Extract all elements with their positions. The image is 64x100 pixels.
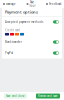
staticText: Bank transfer: [5, 40, 22, 44]
staticText: Accepted payment methods: [5, 20, 43, 24]
button[interactable]: Manage: [3, 0, 16, 8]
button[interactable]: Bank transfer: [2, 36, 62, 47]
button[interactable]: Feedback: [46, 0, 61, 8]
staticText: Save and close: [6, 94, 25, 98]
button[interactable]: Save and close: [4, 93, 27, 98]
button[interactable]: Review and save: [36, 93, 60, 98]
staticText: Feedback: [49, 2, 61, 6]
staticText: PayPal: [5, 51, 13, 55]
staticText: Manage: [6, 2, 16, 6]
staticText: Credit card: [5, 28, 20, 32]
button[interactable]: Take tour: [26, 0, 35, 8]
button[interactable]: PayPal: [2, 47, 62, 58]
staticText: Review and save: [38, 94, 58, 98]
staticText: Take tour: [29, 0, 35, 8]
staticText: Payment options: [5, 9, 38, 15]
button[interactable]: Toggle setting: [53, 40, 59, 44]
button[interactable]: Accepted payment methods: [2, 16, 62, 27]
button[interactable]: Toggle setting: [53, 51, 59, 55]
button[interactable]: Toggle setting: [53, 20, 59, 23]
